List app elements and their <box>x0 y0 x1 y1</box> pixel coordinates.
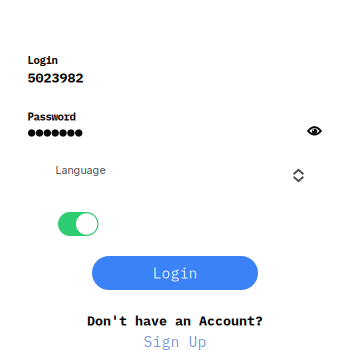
button[interactable]: Show password <box>299 116 329 146</box>
staticText: Sign Up <box>143 332 206 350</box>
staticText: Password <box>27 110 75 123</box>
staticText: 5023982 <box>27 69 83 86</box>
button[interactable]: Remember me <box>58 212 98 236</box>
staticText: Don't have an Account? <box>87 312 263 329</box>
button[interactable]: Login <box>92 256 258 290</box>
button[interactable]: Language <box>56 156 316 184</box>
staticText: Language <box>55 163 105 176</box>
staticText: Login <box>27 53 57 67</box>
button[interactable]: Sign Up <box>143 332 206 350</box>
staticText: Login <box>152 263 197 283</box>
